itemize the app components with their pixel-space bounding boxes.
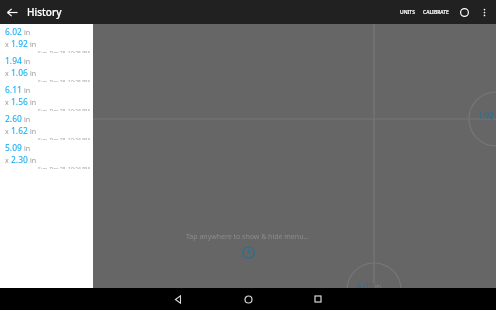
staticText: x	[5, 40, 9, 50]
staticText: in	[24, 115, 31, 125]
staticText: Tap anywhere to show & hide menu...	[186, 232, 310, 242]
staticText: 6.02	[5, 26, 22, 38]
staticText: in	[24, 57, 31, 67]
button[interactable]: 5.09	[0, 140, 93, 169]
staticText: in	[30, 98, 37, 108]
staticText: Sun, Dec 28, 10:24 PM	[38, 108, 90, 111]
button[interactable]: Back	[0, 0, 24, 24]
staticText: in	[24, 28, 31, 38]
staticText: x	[5, 127, 9, 137]
button[interactable]: Home	[213, 288, 283, 310]
staticText: 6.11	[5, 84, 22, 96]
staticText: Sun, Dec 28, 10:24 PM	[38, 166, 90, 169]
staticText: 1.92	[478, 110, 494, 121]
staticText: Sun, Dec 28, 10:25 PM	[38, 50, 90, 53]
staticText: in	[24, 144, 31, 154]
staticText: in	[24, 86, 31, 96]
staticText: x	[5, 98, 9, 108]
staticText: 1.56	[11, 96, 28, 108]
staticText: 1.94	[5, 55, 22, 67]
staticText: in	[30, 40, 37, 50]
staticText: in	[30, 69, 37, 79]
button[interactable]: 1.94	[0, 53, 93, 82]
button[interactable]: CALIBRATE	[419, 5, 453, 20]
staticText: 2.30	[11, 154, 28, 166]
staticText: History	[27, 5, 62, 19]
button[interactable]: 6.11	[0, 82, 93, 111]
staticText: 1.62	[11, 125, 28, 137]
staticText: 5.09	[5, 142, 22, 154]
staticText: 2.60	[5, 113, 22, 125]
staticText: CALIBRATE	[423, 9, 449, 16]
button[interactable]: Record	[453, 1, 475, 23]
staticText: 1.06	[11, 67, 28, 79]
button[interactable]: UNITS	[396, 5, 419, 20]
staticText: 6.02	[357, 281, 373, 292]
button[interactable]: Back	[143, 288, 213, 310]
button[interactable]: Recent apps	[283, 288, 353, 310]
staticText: in	[30, 127, 37, 137]
staticText: in	[375, 282, 382, 292]
button[interactable]: 2.60	[0, 111, 93, 140]
staticText: Sun, Dec 28, 10:24 PM	[38, 137, 90, 140]
staticText: UNITS	[400, 9, 415, 16]
staticText: 1.92	[11, 38, 28, 50]
staticText: x	[5, 69, 9, 79]
staticText: Sun, Dec 28, 10:25 PM	[38, 79, 90, 82]
staticText: x	[5, 156, 9, 166]
other: History	[242, 246, 255, 259]
button[interactable]: 6.02	[0, 24, 93, 53]
button[interactable]: More options	[475, 3, 493, 21]
staticText: in	[30, 156, 37, 166]
